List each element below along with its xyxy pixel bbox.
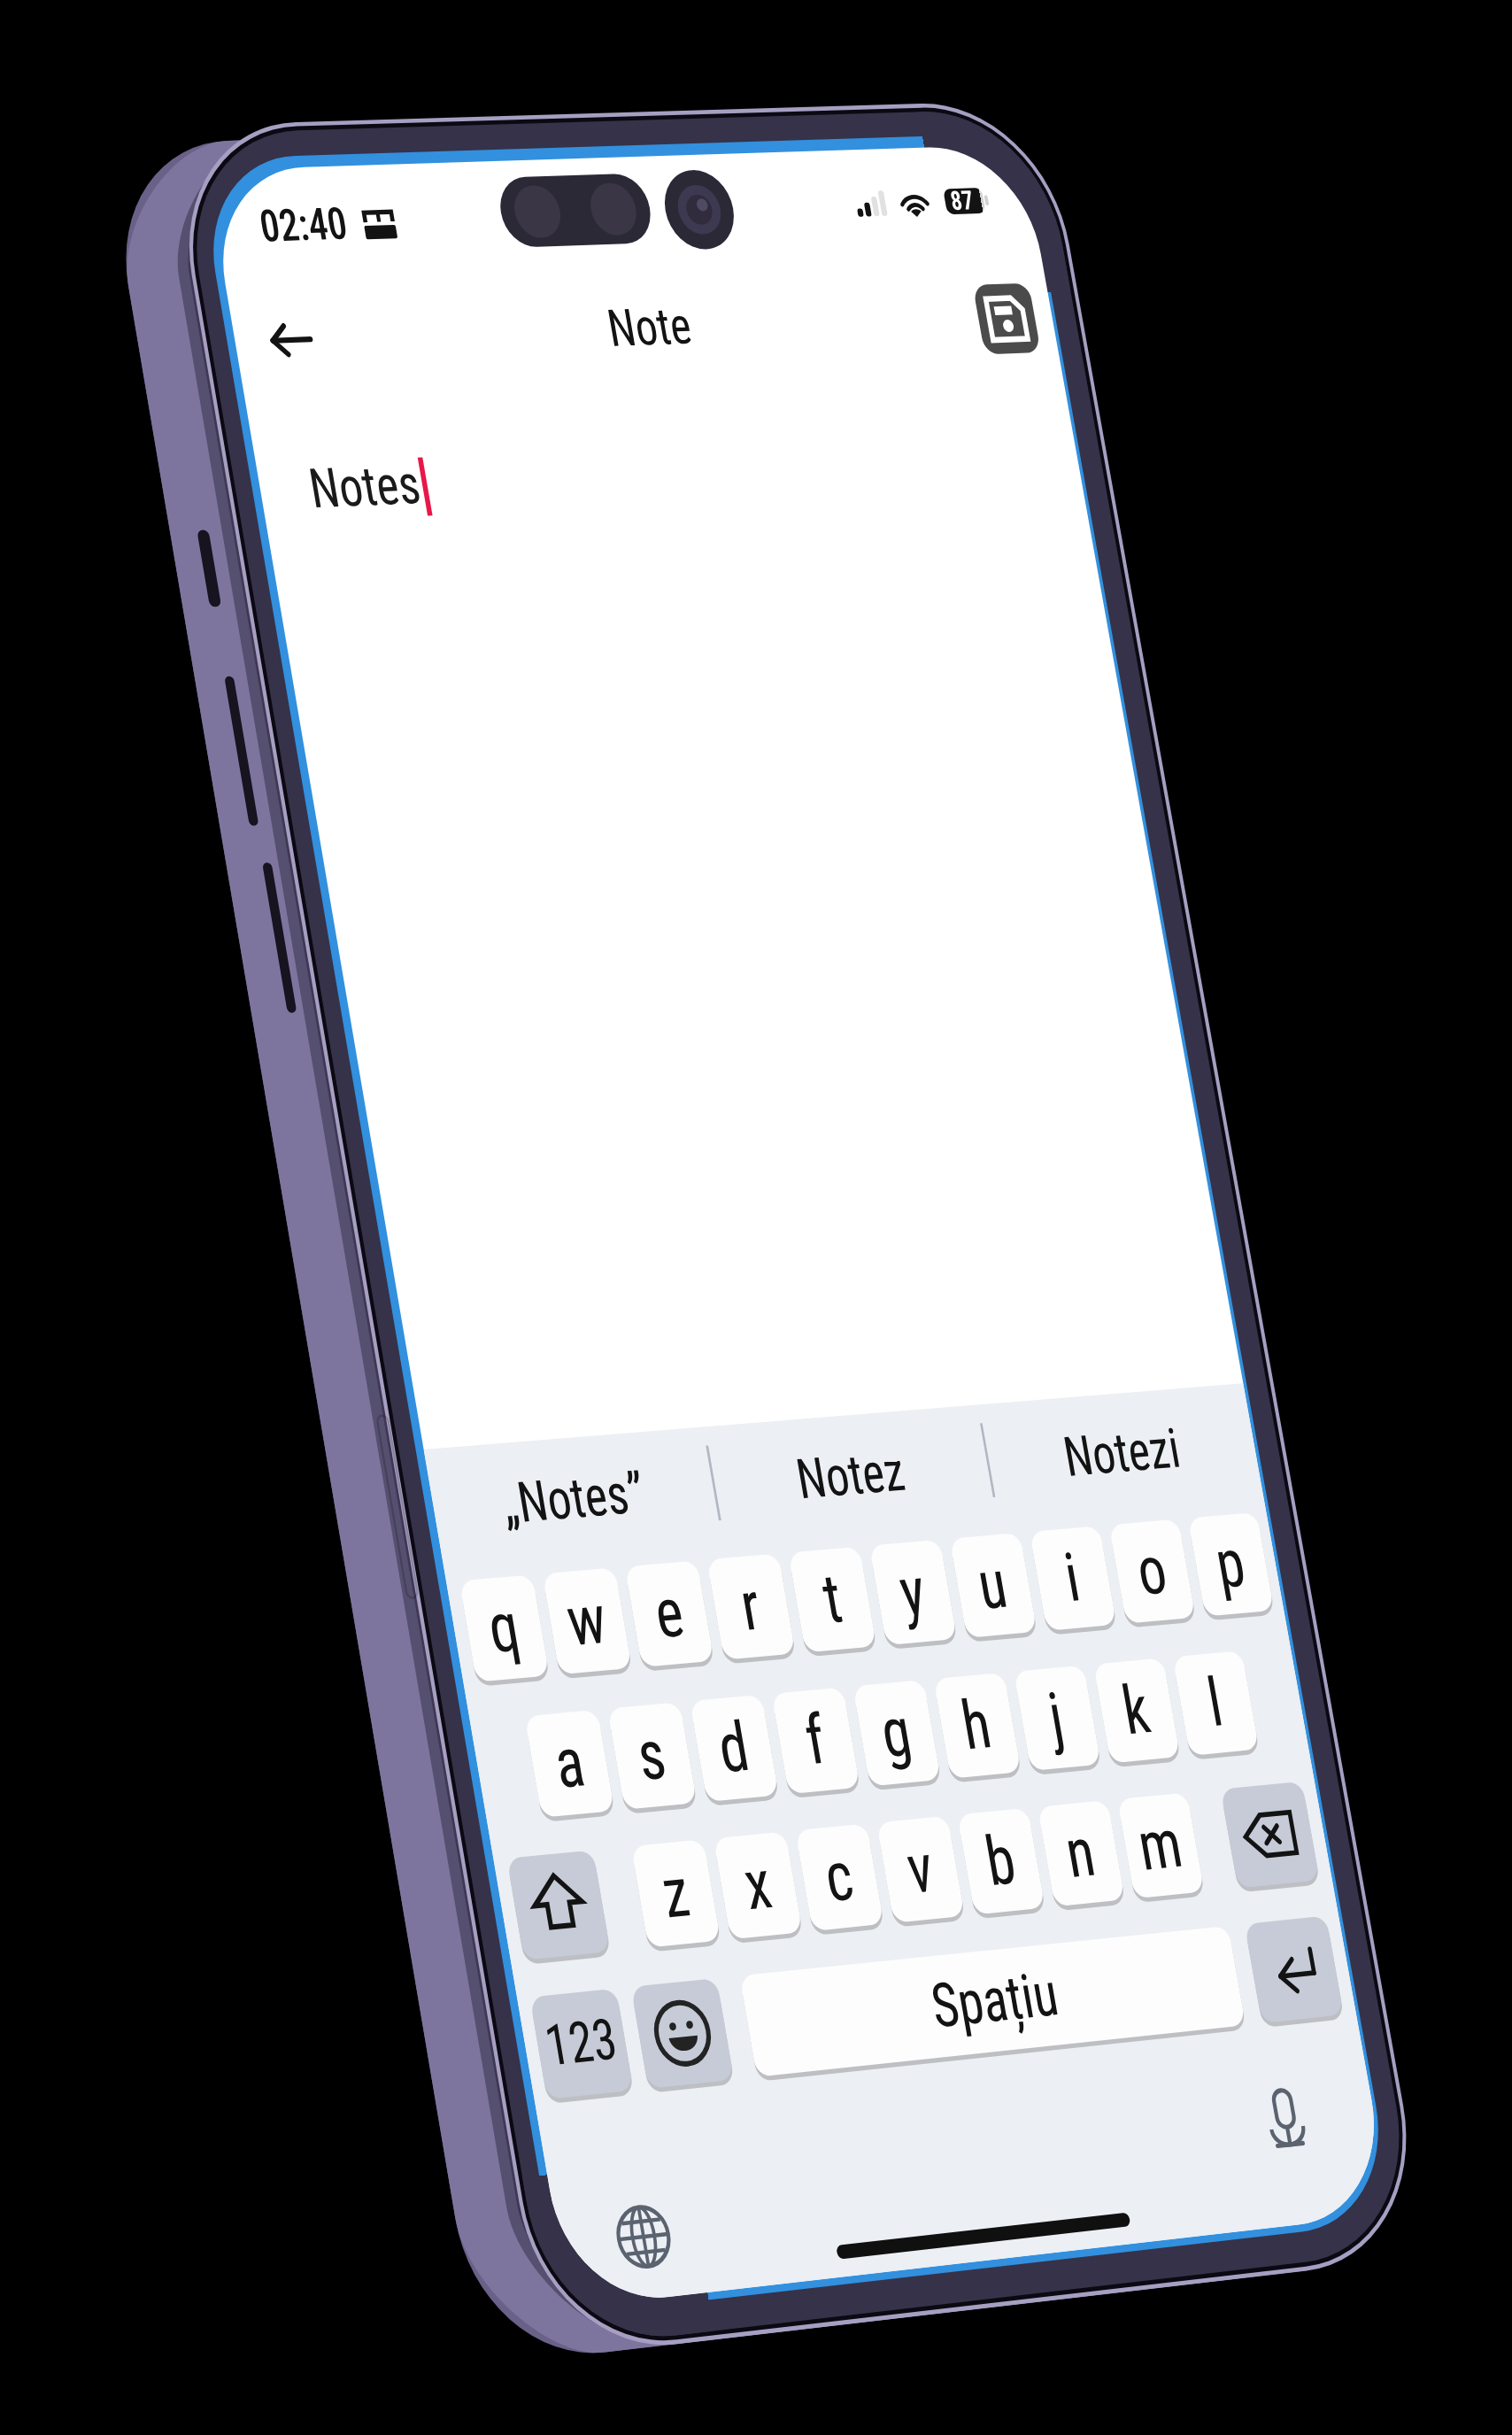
button[interactable] [0,0,1512,2435]
